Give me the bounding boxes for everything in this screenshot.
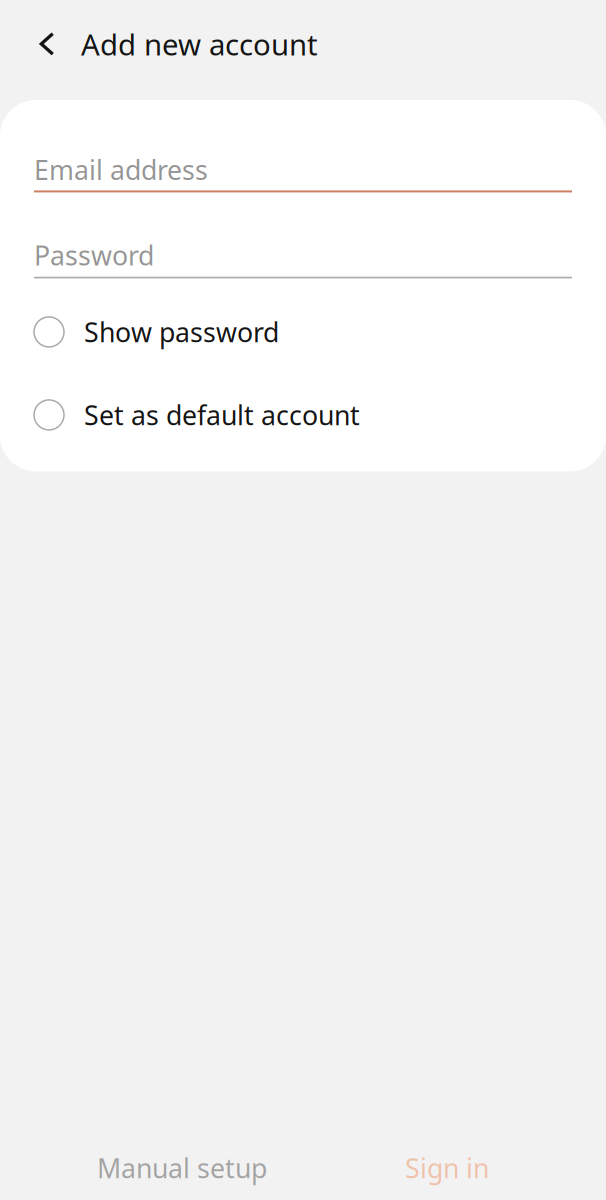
button[interactable]: Password [0,237,606,278]
button[interactable]: Manual setup [72,1136,292,1200]
button[interactable]: Back [24,21,70,67]
button[interactable]: Email address [0,152,606,192]
staticText: Manual setup [97,1150,267,1186]
button[interactable]: Sign in [380,1136,514,1200]
staticText: Show password [84,314,279,350]
staticText: Add new account [81,24,318,63]
button[interactable]: Set as default account [0,373,606,456]
staticText: Email address [34,152,208,187]
button[interactable]: Show password [0,290,606,373]
staticText: Set as default account [84,397,360,433]
staticText: Sign in [405,1150,489,1186]
staticText: Password [34,237,154,273]
